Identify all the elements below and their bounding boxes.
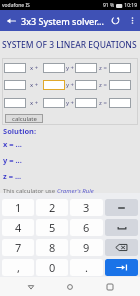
button[interactable]: Cramer's Rule xyxy=(57,187,94,195)
button[interactable]: 1 xyxy=(2,199,34,216)
button[interactable]: 2 xyxy=(36,199,68,216)
staticText: 5 xyxy=(49,220,56,235)
staticText: 2 xyxy=(49,200,56,215)
staticText: calculate xyxy=(12,115,37,123)
button[interactable]: 5 xyxy=(36,219,68,236)
staticText: z = ... xyxy=(3,171,22,181)
staticText: x + xyxy=(30,81,39,89)
button[interactable]: Refresh xyxy=(106,11,125,30)
button[interactable]: Backspace xyxy=(105,239,138,256)
button[interactable]: 8 xyxy=(36,239,68,256)
button[interactable] xyxy=(43,98,65,108)
button[interactable]: Space xyxy=(105,219,138,236)
staticText: 7 xyxy=(15,240,22,255)
button[interactable]: Next xyxy=(105,259,138,276)
staticText: 8 xyxy=(49,240,56,255)
button[interactable]: 3 xyxy=(70,199,103,216)
staticText: z = xyxy=(99,99,107,107)
staticText: z = xyxy=(99,64,107,72)
staticText: 91 % xyxy=(103,2,116,9)
staticText: , xyxy=(17,260,20,275)
staticText: 1 xyxy=(15,200,22,215)
button[interactable]: . xyxy=(70,259,103,276)
button[interactable] xyxy=(109,80,131,90)
button[interactable]: 4 xyxy=(2,219,34,236)
button[interactable]: Home xyxy=(61,278,79,296)
staticText: 0 xyxy=(49,260,56,275)
button[interactable] xyxy=(4,98,26,108)
button[interactable]: Back xyxy=(22,278,40,296)
button[interactable] xyxy=(4,80,26,90)
staticText: y = ... xyxy=(3,155,22,165)
staticText: SYSTEM OF 3 LINEAR EQUATIONS xyxy=(2,39,137,51)
staticText: 10:19 xyxy=(123,2,138,9)
button[interactable]: 0 xyxy=(36,259,68,276)
button[interactable]: Back xyxy=(0,10,21,31)
button[interactable]: Minus xyxy=(105,199,138,216)
staticText: x + xyxy=(30,99,39,107)
button[interactable] xyxy=(109,98,131,108)
staticText: z = xyxy=(99,81,107,89)
button[interactable] xyxy=(75,98,97,108)
button[interactable]: , xyxy=(2,259,34,276)
button[interactable] xyxy=(43,63,65,73)
button[interactable]: 7 xyxy=(2,239,34,256)
staticText: . xyxy=(85,260,88,275)
button[interactable] xyxy=(43,80,65,90)
staticText: y + xyxy=(66,99,75,107)
button[interactable] xyxy=(75,63,97,73)
staticText: x = ... xyxy=(3,139,22,149)
button[interactable]: 6 xyxy=(70,219,103,236)
staticText: 9 xyxy=(83,240,90,255)
staticText: y + xyxy=(66,81,75,89)
button[interactable] xyxy=(4,63,26,73)
button[interactable] xyxy=(75,80,97,90)
button[interactable]: 9 xyxy=(70,239,103,256)
staticText: 3 xyxy=(83,200,90,215)
staticText: This calculator use xyxy=(3,187,57,195)
staticText: x + xyxy=(30,64,39,72)
staticText: 4 xyxy=(15,220,22,235)
button[interactable]: Recents xyxy=(101,278,119,296)
button[interactable]: More options xyxy=(125,13,140,28)
staticText: y + xyxy=(66,64,75,72)
staticText: 6 xyxy=(83,220,90,235)
staticText: vodafone IS xyxy=(2,2,30,9)
staticText: Solution: xyxy=(3,126,37,136)
staticText: 3x3 System solver... xyxy=(21,15,106,27)
button[interactable] xyxy=(109,63,131,73)
button[interactable]: calculate xyxy=(5,114,43,123)
